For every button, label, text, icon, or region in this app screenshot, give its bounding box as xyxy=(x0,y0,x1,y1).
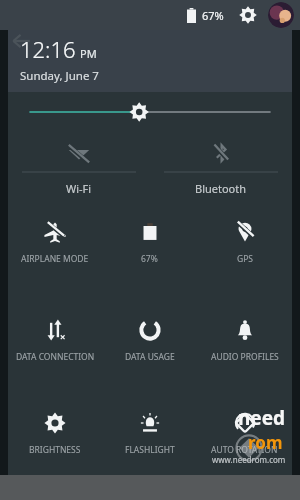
button[interactable]: FLASHLIGHT xyxy=(102,397,197,475)
staticText: www.needrom.com xyxy=(212,454,286,465)
button[interactable]: Settings xyxy=(234,1,262,29)
button[interactable]: AUDIO PROFILES xyxy=(197,302,292,397)
button[interactable]: Battery 67 percent xyxy=(180,3,202,27)
button[interactable]: AUTO ROTATION xyxy=(197,397,292,475)
staticText: DATA USAGE xyxy=(125,351,175,363)
button[interactable]: AIRPLANE MODE xyxy=(8,204,102,302)
staticText: Bluetooth xyxy=(195,181,247,196)
button[interactable]: DATA CONNECTION xyxy=(8,302,102,397)
staticText: AIRPLANE MODE xyxy=(21,253,89,265)
button[interactable]: Brightness slider xyxy=(8,92,292,132)
button[interactable]: 67% xyxy=(102,204,197,302)
staticText: AUDIO PROFILES xyxy=(211,351,279,363)
staticText: FLASHLIGHT xyxy=(125,444,175,456)
staticText: 12:16 xyxy=(20,34,76,64)
button[interactable]: User profile xyxy=(268,2,294,28)
staticText: Wi-Fi xyxy=(66,181,92,196)
staticText: GPS xyxy=(237,253,253,265)
button[interactable]: Bluetooth xyxy=(150,132,292,204)
staticText: need xyxy=(238,405,286,431)
staticText: PM xyxy=(80,46,97,61)
staticText: DATA CONNECTION xyxy=(16,351,95,363)
button[interactable]: GPS xyxy=(197,204,292,302)
staticText: rom xyxy=(248,431,283,454)
button[interactable]: DATA USAGE xyxy=(102,302,197,397)
staticText: 67% xyxy=(141,253,158,265)
staticText: BRIGHTNESS xyxy=(29,444,81,456)
staticText: 67% xyxy=(202,8,224,23)
button[interactable]: BRIGHTNESS xyxy=(8,397,102,475)
staticText: AUTO ROTATION xyxy=(211,444,278,456)
staticText: Sunday, June 7 xyxy=(20,68,99,84)
button[interactable]: Wi-Fi xyxy=(8,132,150,204)
